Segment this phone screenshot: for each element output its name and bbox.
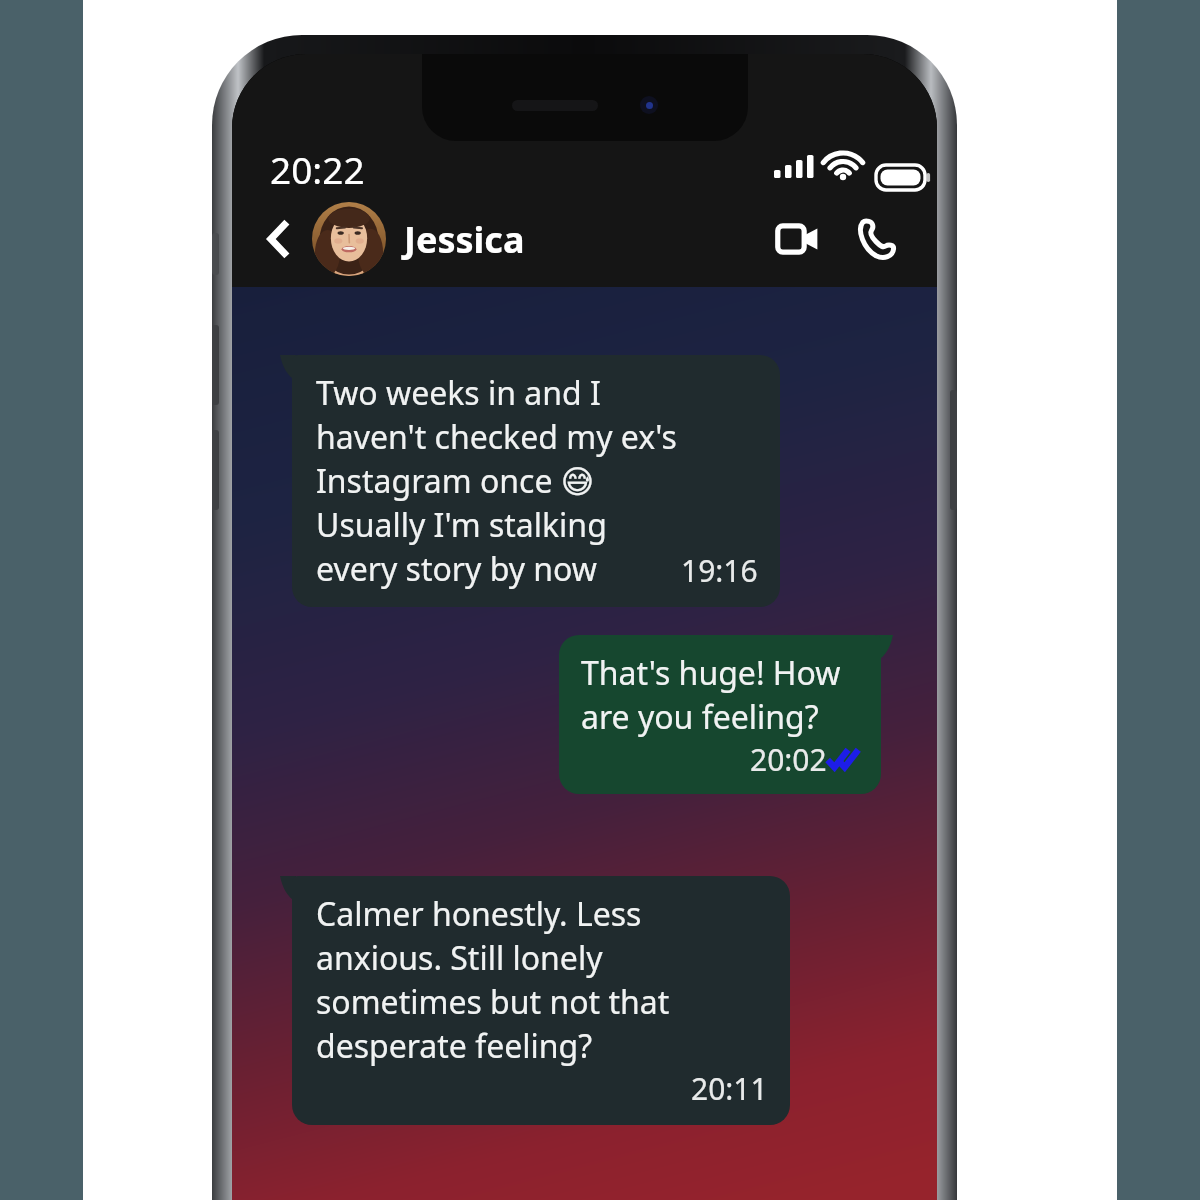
button[interactable]: Calmer honestly. Less [292,876,790,1125]
staticText: haven't checked my ex's [316,415,677,459]
staticText: Two weeks in and I [316,371,601,415]
staticText: every story by now [316,547,597,591]
staticText: Calmer honestly. Less [316,892,642,936]
staticText: Instagram once 😅 [316,459,595,503]
staticText: 20:02 [750,739,827,780]
staticText: 20:22 [270,144,365,194]
staticText: desperate feeling? [316,1024,593,1068]
staticText: That's huge! How [581,651,841,695]
button[interactable]: Jessica [404,215,525,264]
staticText: anxious. Still lonely [316,936,603,980]
staticText: Usually I'm stalking [316,503,607,547]
staticText: 20:11 [691,1068,768,1109]
staticText: 19:16 [681,550,758,591]
button[interactable]: Back [250,211,306,267]
staticText: are you feeling? [581,695,819,739]
button[interactable]: Profile photo [312,202,386,276]
button[interactable]: Voice call [845,208,907,270]
button[interactable]: That's huge! How [559,635,881,794]
button[interactable]: Video call [767,208,829,270]
button[interactable]: Two weeks in and I [292,355,780,607]
staticText: sometimes but not that [316,980,670,1024]
